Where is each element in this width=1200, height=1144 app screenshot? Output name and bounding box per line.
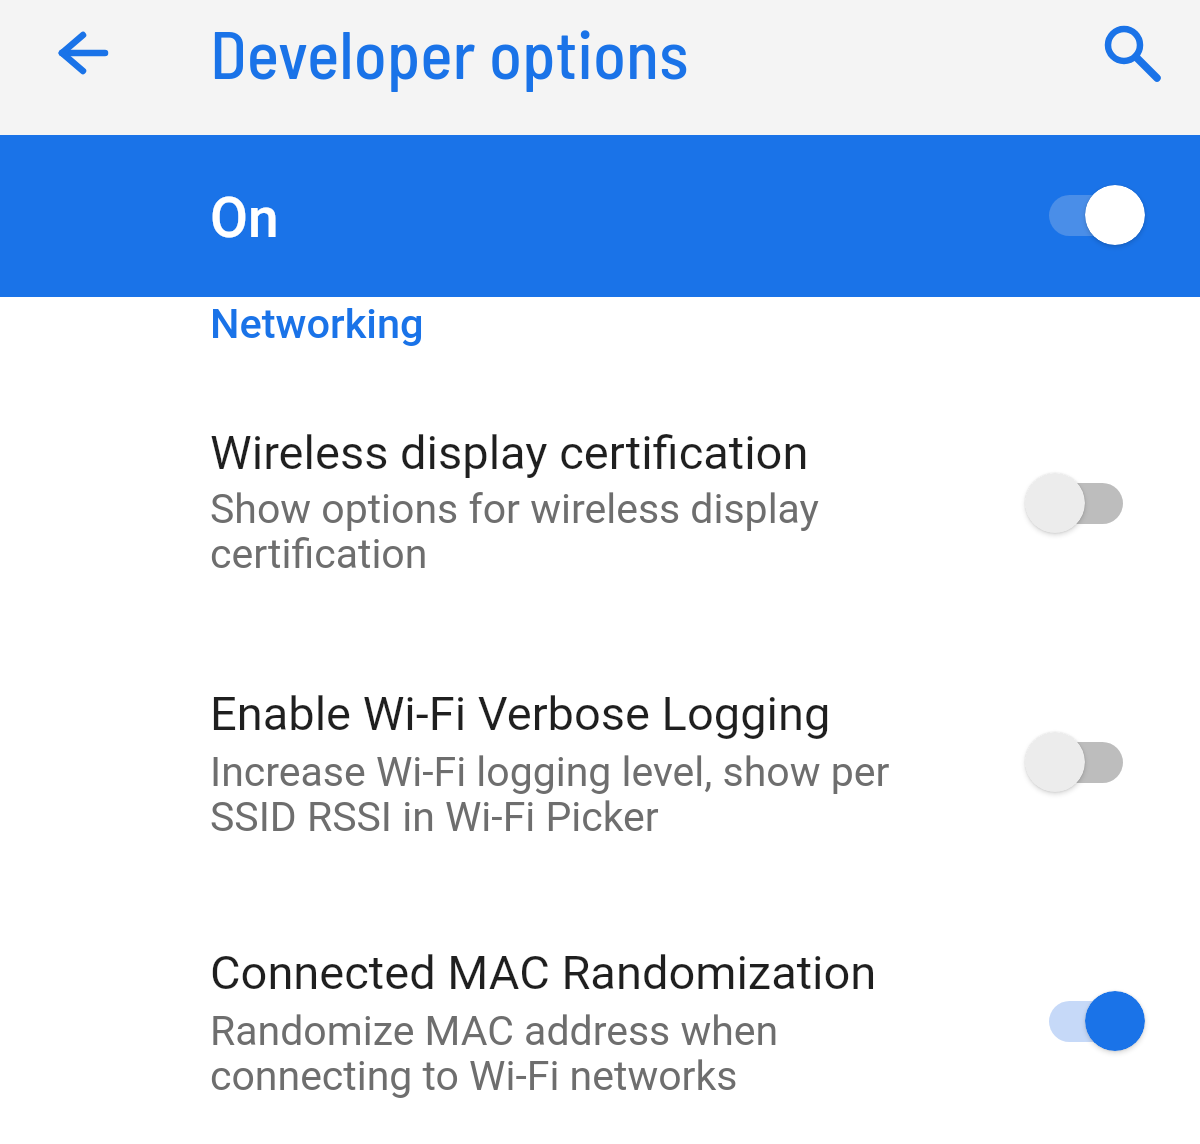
button[interactable] <box>0 400 1200 590</box>
staticText: On <box>210 186 279 250</box>
button[interactable] <box>0 661 1200 851</box>
button[interactable]: Enabled, switch on <box>1039 986 1155 1056</box>
staticText: Connected MAC Randomization <box>210 945 877 1000</box>
staticText: Wireless display certification <box>210 425 809 480</box>
button[interactable]: Disabled, switch off <box>1015 468 1131 538</box>
button[interactable] <box>0 920 1200 1110</box>
button[interactable]: Navigate up <box>40 15 120 95</box>
button[interactable]: Enabled, switch on <box>1039 180 1155 250</box>
staticText: Networking <box>210 299 424 348</box>
staticText: Enable Wi-Fi Verbose Logging <box>210 686 831 741</box>
staticText: Increase Wi-Fi logging level, show per S… <box>210 748 890 841</box>
button[interactable]: Search <box>1085 5 1165 85</box>
staticText: Developer options <box>210 11 689 92</box>
button[interactable] <box>0 135 1200 297</box>
button[interactable]: Disabled, switch off <box>1015 727 1131 797</box>
staticText: Show options for wireless display certif… <box>210 485 820 578</box>
staticText: Randomize MAC address when connecting to… <box>210 1007 779 1100</box>
